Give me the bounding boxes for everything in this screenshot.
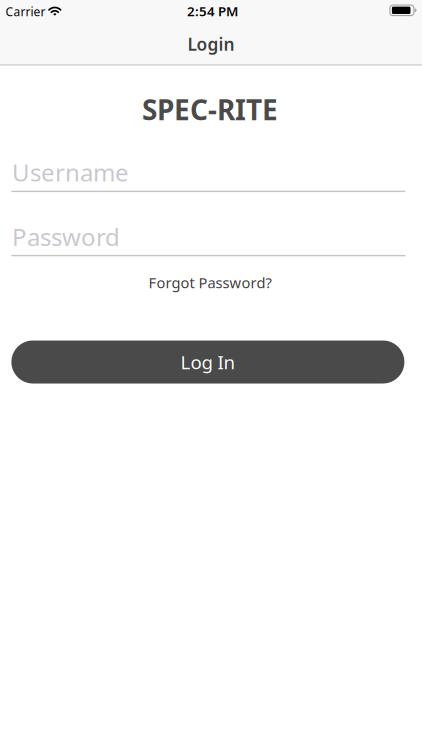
staticText: Password	[12, 221, 120, 253]
staticText: Carrier	[5, 4, 45, 20]
button[interactable]: Log In	[11, 340, 404, 383]
staticText: Login	[187, 32, 234, 55]
staticText: Username	[12, 156, 129, 188]
button[interactable]: Forgot Password?	[148, 273, 271, 292]
staticText: SPEC-RITE	[142, 91, 278, 128]
staticText: 2:54 PM	[187, 2, 238, 20]
staticText: Forgot Password?	[148, 273, 271, 292]
staticText: Log In	[180, 350, 235, 374]
